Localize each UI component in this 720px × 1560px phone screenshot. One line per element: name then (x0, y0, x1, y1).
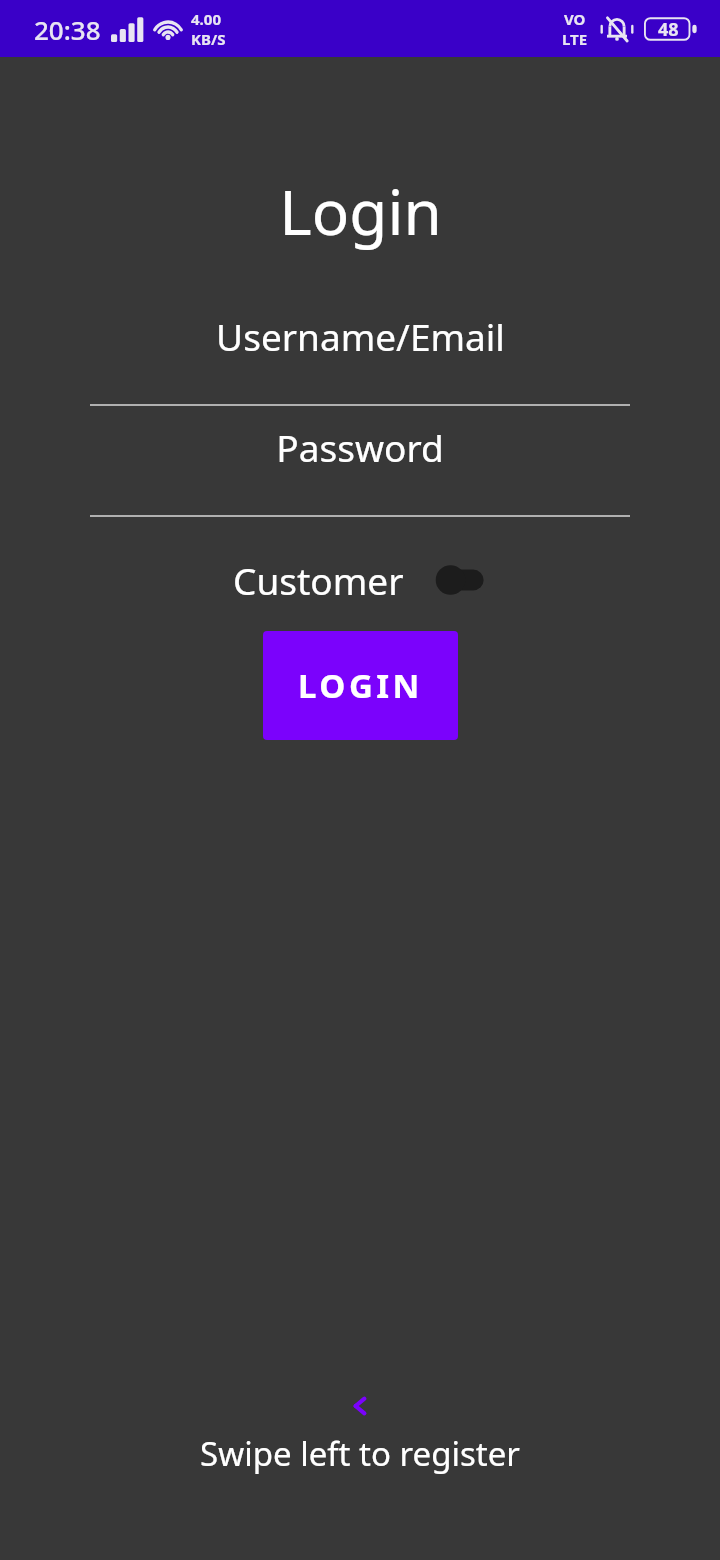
staticText: 20:38 (34, 12, 101, 47)
staticText: LOGIN (298, 663, 423, 708)
staticText: Password (276, 422, 444, 472)
staticText: LTE (562, 29, 588, 49)
staticText: Customer (233, 555, 404, 605)
staticText: VO (564, 9, 586, 29)
button[interactable]: Username/Email (0, 311, 720, 406)
staticText: 4.00 (191, 9, 221, 29)
staticText: Login (279, 169, 442, 253)
button[interactable]: Customer (227, 551, 494, 609)
button[interactable]: LOGIN (263, 631, 458, 740)
button[interactable]: Password (0, 422, 720, 517)
button[interactable]: Customer toggle (430, 560, 488, 600)
staticText: KB/S (191, 29, 226, 49)
staticText: Swipe left to register (200, 1431, 520, 1476)
button[interactable]: Swipe left to register (0, 1393, 720, 1476)
staticText: Username/Email (216, 311, 505, 361)
staticText: 48 (658, 17, 679, 42)
